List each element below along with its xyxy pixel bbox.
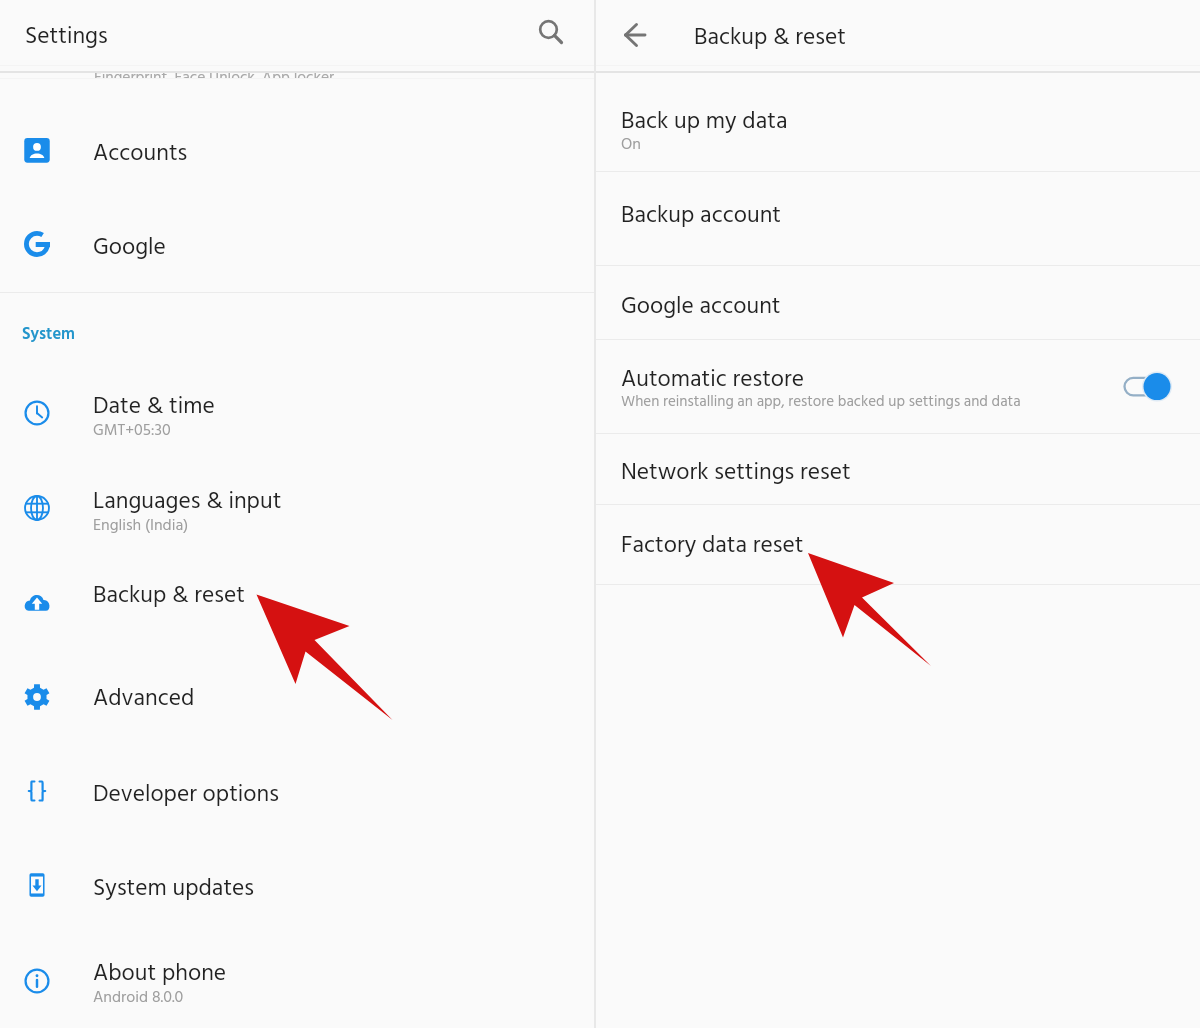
staticText: English (India) — [93, 513, 189, 539]
button[interactable] — [0, 461, 595, 537]
staticText: Advanced — [93, 680, 195, 718]
staticText: Fingerprint, Face Unlock, App locker — [94, 68, 335, 78]
button[interactable] — [0, 555, 595, 615]
button[interactable] — [596, 266, 1200, 340]
button[interactable] — [0, 366, 595, 442]
staticText: GMT+05:30 — [93, 418, 171, 444]
staticText: Google — [93, 229, 166, 267]
staticText: Back up my data — [621, 103, 788, 141]
staticText: Accounts — [93, 135, 188, 173]
staticText: Backup & reset — [694, 19, 846, 57]
button[interactable]: Back — [613, 11, 661, 59]
staticText: Languages & input — [93, 483, 282, 521]
staticText: Factory data reset — [621, 527, 804, 565]
staticText: About phone — [93, 955, 227, 993]
staticText: Developer options — [93, 776, 279, 814]
button[interactable] — [0, 207, 595, 267]
button[interactable] — [0, 658, 595, 718]
button[interactable] — [0, 113, 595, 173]
button[interactable] — [0, 754, 595, 814]
button[interactable] — [596, 72, 1200, 172]
staticText: Settings — [25, 18, 108, 56]
staticText: System — [22, 322, 76, 348]
button[interactable] — [596, 340, 1200, 434]
staticText: Backup account — [621, 197, 782, 235]
staticText: Date & time — [93, 388, 215, 426]
staticText: When reinstalling an app, restore backed… — [621, 390, 1021, 414]
button[interactable] — [596, 434, 1200, 505]
button[interactable]: Search — [529, 11, 577, 59]
button[interactable]: Automatic restore toggle — [1108, 364, 1178, 410]
staticText: Backup & reset — [93, 577, 245, 615]
button[interactable] — [596, 172, 1200, 266]
button[interactable] — [596, 505, 1200, 585]
staticText: Android 8.0.0 — [93, 985, 184, 1011]
staticText: On — [621, 132, 641, 158]
staticText: Network settings reset — [621, 454, 851, 492]
button[interactable] — [0, 848, 595, 908]
staticText: Automatic restore — [621, 361, 804, 399]
staticText: System updates — [93, 870, 254, 908]
staticText: Google account — [621, 288, 781, 326]
button[interactable] — [0, 933, 595, 1009]
